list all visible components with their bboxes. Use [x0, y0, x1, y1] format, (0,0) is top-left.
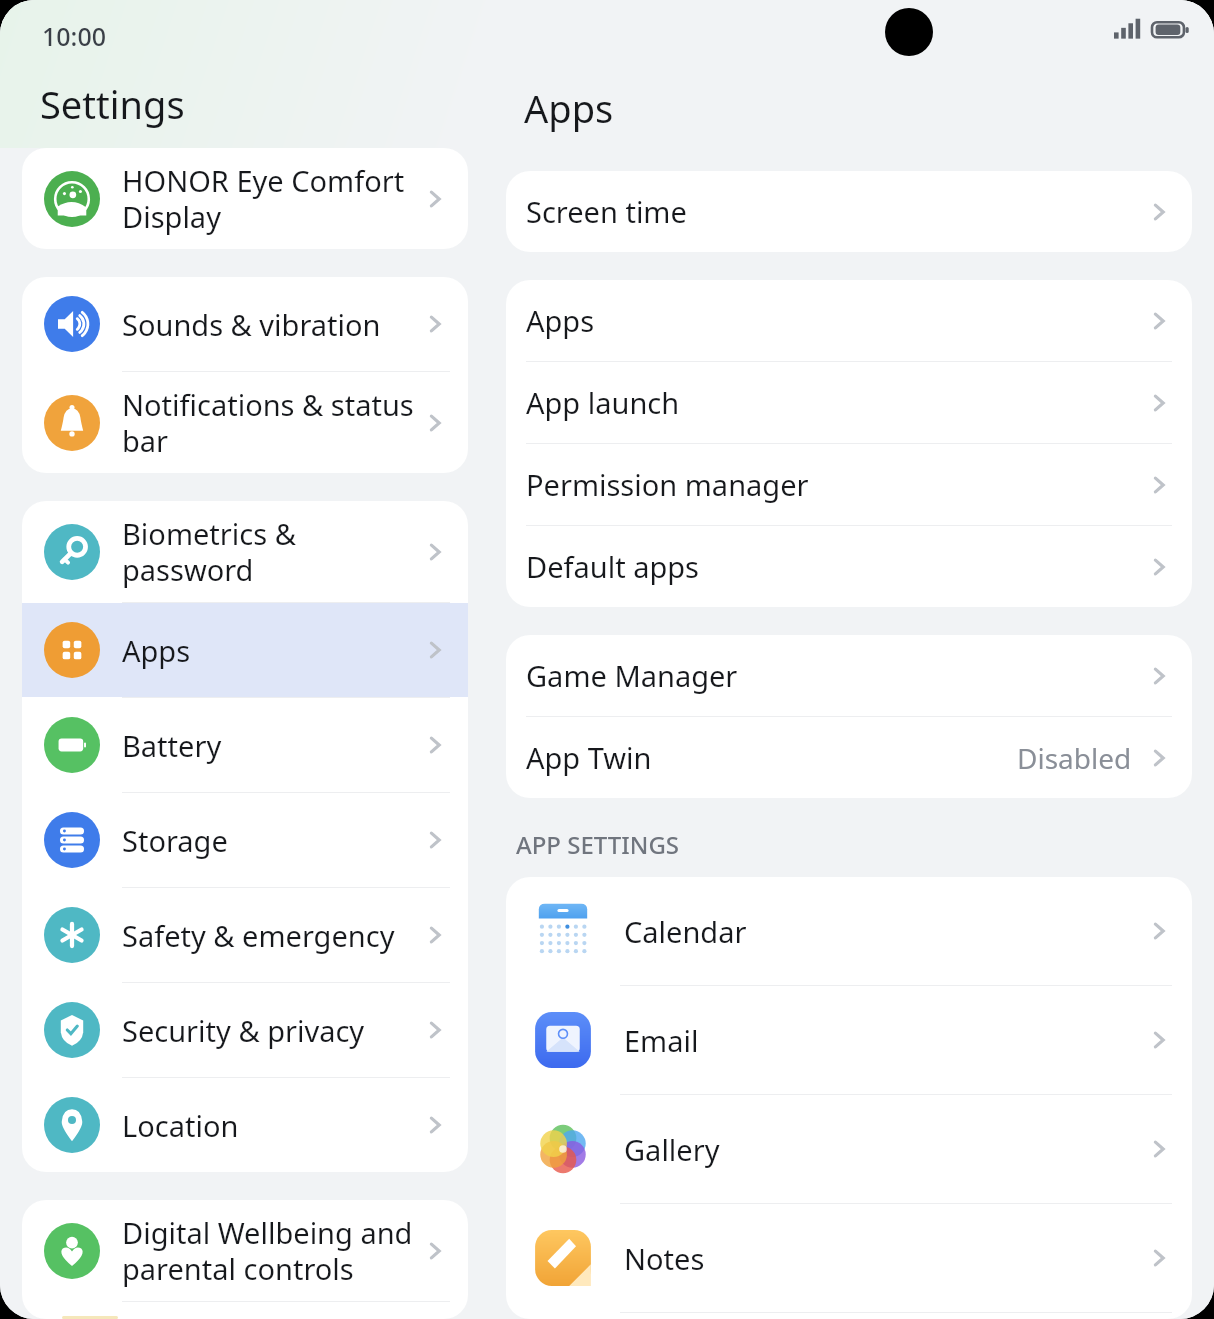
- staticText: Disabled: [1017, 739, 1132, 777]
- button[interactable]: Location: [22, 1078, 468, 1172]
- button[interactable]: App Twin: [506, 717, 1192, 798]
- button[interactable]: Storage: [22, 793, 468, 887]
- staticText: Permission manager: [526, 465, 1144, 504]
- staticText: Game Manager: [526, 656, 1144, 695]
- staticText: Sounds & vibration: [122, 305, 420, 344]
- button[interactable]: Calendar: [506, 877, 1192, 985]
- staticText: APP SETTINGS: [516, 828, 680, 861]
- button[interactable]: Notifications & status bar: [22, 372, 468, 473]
- other: Signal and battery: [1113, 18, 1190, 42]
- staticText: Email: [624, 1021, 1144, 1060]
- button[interactable]: Email: [506, 986, 1192, 1094]
- staticText: Calendar: [624, 912, 1144, 951]
- staticText: Screen time: [526, 192, 1144, 231]
- button[interactable]: Battery: [22, 698, 468, 792]
- staticText: Notifications & status bar: [122, 385, 420, 461]
- staticText: Gallery: [624, 1130, 1144, 1169]
- staticText: Storage: [122, 821, 420, 860]
- button[interactable]: Apps: [22, 603, 468, 697]
- button[interactable]: Permission manager: [506, 444, 1192, 525]
- button[interactable]: Default apps: [506, 526, 1192, 607]
- button[interactable]: Biometrics & password: [22, 501, 468, 602]
- staticText: Apps: [122, 631, 420, 670]
- staticText: Settings: [40, 78, 185, 130]
- staticText: App Twin: [526, 738, 1017, 777]
- staticText: Apps: [524, 82, 614, 134]
- button[interactable]: App launch: [506, 362, 1192, 443]
- staticText: Digital Wellbeing and parental controls: [122, 1213, 420, 1289]
- button[interactable]: Notes: [506, 1204, 1192, 1312]
- button[interactable]: Apps: [506, 280, 1192, 361]
- button[interactable]: Screen time: [506, 171, 1192, 252]
- staticText: Security & privacy: [122, 1011, 420, 1050]
- staticText: Location: [122, 1106, 420, 1145]
- button[interactable]: Digital Wellbeing and parental controls: [22, 1200, 468, 1301]
- staticText: HONOR Eye Comfort Display: [122, 161, 420, 237]
- button[interactable]: Sounds & vibration: [22, 277, 468, 371]
- staticText: Battery: [122, 726, 420, 765]
- button[interactable]: Security & privacy: [22, 983, 468, 1077]
- button[interactable]: Game Manager: [506, 635, 1192, 716]
- staticText: 10:00: [42, 19, 107, 53]
- button[interactable]: HONOR Eye Comfort Display: [22, 148, 468, 249]
- staticText: Apps: [526, 301, 1144, 340]
- staticText: App launch: [526, 383, 1144, 422]
- staticText: Biometrics & password: [122, 514, 420, 590]
- button[interactable]: Safety & emergency: [22, 888, 468, 982]
- staticText: Default apps: [526, 547, 1144, 586]
- staticText: Safety & emergency: [122, 916, 420, 955]
- button[interactable]: Gallery: [506, 1095, 1192, 1203]
- staticText: Notes: [624, 1239, 1144, 1278]
